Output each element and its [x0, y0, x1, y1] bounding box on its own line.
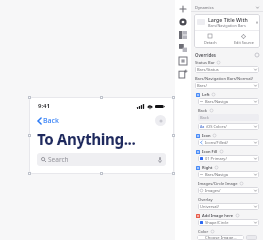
staticText: Aa — [200, 124, 205, 129]
button[interactable]: Choose Image... — [197, 235, 244, 240]
button[interactable]: Profile — [155, 115, 166, 126]
staticText: iOS Colors/01 L...0/Primary - Light — [206, 124, 230, 129]
button[interactable]: Components — [175, 2, 191, 15]
staticText: Bars/Navigation Bars/Normal/Links — [195, 76, 259, 81]
staticText: Back — [200, 115, 209, 120]
button[interactable]: Bars/Navigatio...ltem/Left/Back — [198, 98, 259, 105]
staticText: Icon Fill — [202, 149, 218, 154]
button[interactable]: Bars/Status Bar/On White — [195, 66, 259, 73]
staticText: Right — [202, 165, 213, 170]
button[interactable]: Search — [37, 153, 166, 166]
staticText: Color — [198, 229, 209, 234]
staticText: 01 Primary/Primary Base-500 — [205, 156, 229, 161]
button[interactable]: Shape/Circle — [198, 219, 259, 226]
staticText: Icons/Filled/iOS-Back — [205, 140, 229, 145]
button[interactable]: Add frame — [175, 67, 191, 80]
staticText: Overrides — [195, 52, 216, 58]
staticText: 9:41 — [38, 102, 50, 110]
staticText: Choose Image... — [205, 235, 237, 240]
button[interactable]: Frames — [175, 54, 191, 67]
staticText: Bars/Navigatio...ltem/Left/Back — [205, 99, 229, 104]
staticText: Status Bar — [195, 60, 215, 65]
button[interactable]: Icons/Filled/iOS-Back — [198, 139, 259, 146]
button[interactable]: 01 Primary/Primary Base-500 — [198, 155, 259, 162]
staticText: Add Image here — [202, 213, 234, 218]
button[interactable]: More — [246, 235, 257, 240]
staticText: Bars/Navigatio...rs/Right/Image — [205, 172, 229, 177]
button[interactable]: Back — [37, 116, 59, 126]
button[interactable]: Layers — [175, 28, 191, 41]
staticText: Edit Source — [234, 40, 254, 45]
staticText: Icon — [202, 133, 211, 138]
button[interactable]: Bars/Navigation Bars/Normal/Links — [195, 82, 259, 89]
button[interactable]: Universal/None — [198, 203, 259, 210]
staticText: Large Title With Search — [208, 16, 257, 23]
staticText: Images/Circle Image — [205, 188, 229, 193]
staticText: Bars/Status Bar/On White — [197, 67, 225, 72]
button[interactable]: Aa — [198, 123, 259, 130]
button[interactable]: Assets — [175, 41, 191, 54]
button[interactable]: Dynamics — [191, 3, 263, 11]
staticText: Bars/Navigation Bars — [208, 23, 246, 28]
staticText: Universal/None — [200, 204, 227, 209]
staticText: Bars/Navigation Bars/Normal/Links — [197, 83, 225, 88]
staticText: Shape/Circle — [205, 220, 229, 225]
button[interactable]: Detach — [194, 31, 227, 48]
button[interactable]: Edit Source — [227, 31, 260, 48]
staticText: Dynamics — [195, 5, 214, 10]
staticText: Search — [48, 155, 69, 164]
staticText: Back — [43, 116, 59, 126]
button[interactable]: Overrides — [191, 51, 263, 59]
staticText: Left — [202, 92, 210, 97]
button[interactable]: Bars/Navigatio...rs/Right/Image — [198, 171, 259, 178]
staticText: To Anything... — [37, 129, 136, 149]
staticText: Overlay — [198, 197, 213, 202]
button[interactable]: Images/Circle Image — [198, 187, 259, 194]
staticText: Back — [198, 108, 208, 113]
button[interactable]: Settings — [175, 15, 191, 28]
staticText: Detach — [204, 40, 217, 45]
button[interactable]: Back — [198, 114, 259, 121]
button[interactable]: Large Title With Search — [194, 14, 260, 48]
staticText: Images/Circle Image — [198, 181, 238, 186]
